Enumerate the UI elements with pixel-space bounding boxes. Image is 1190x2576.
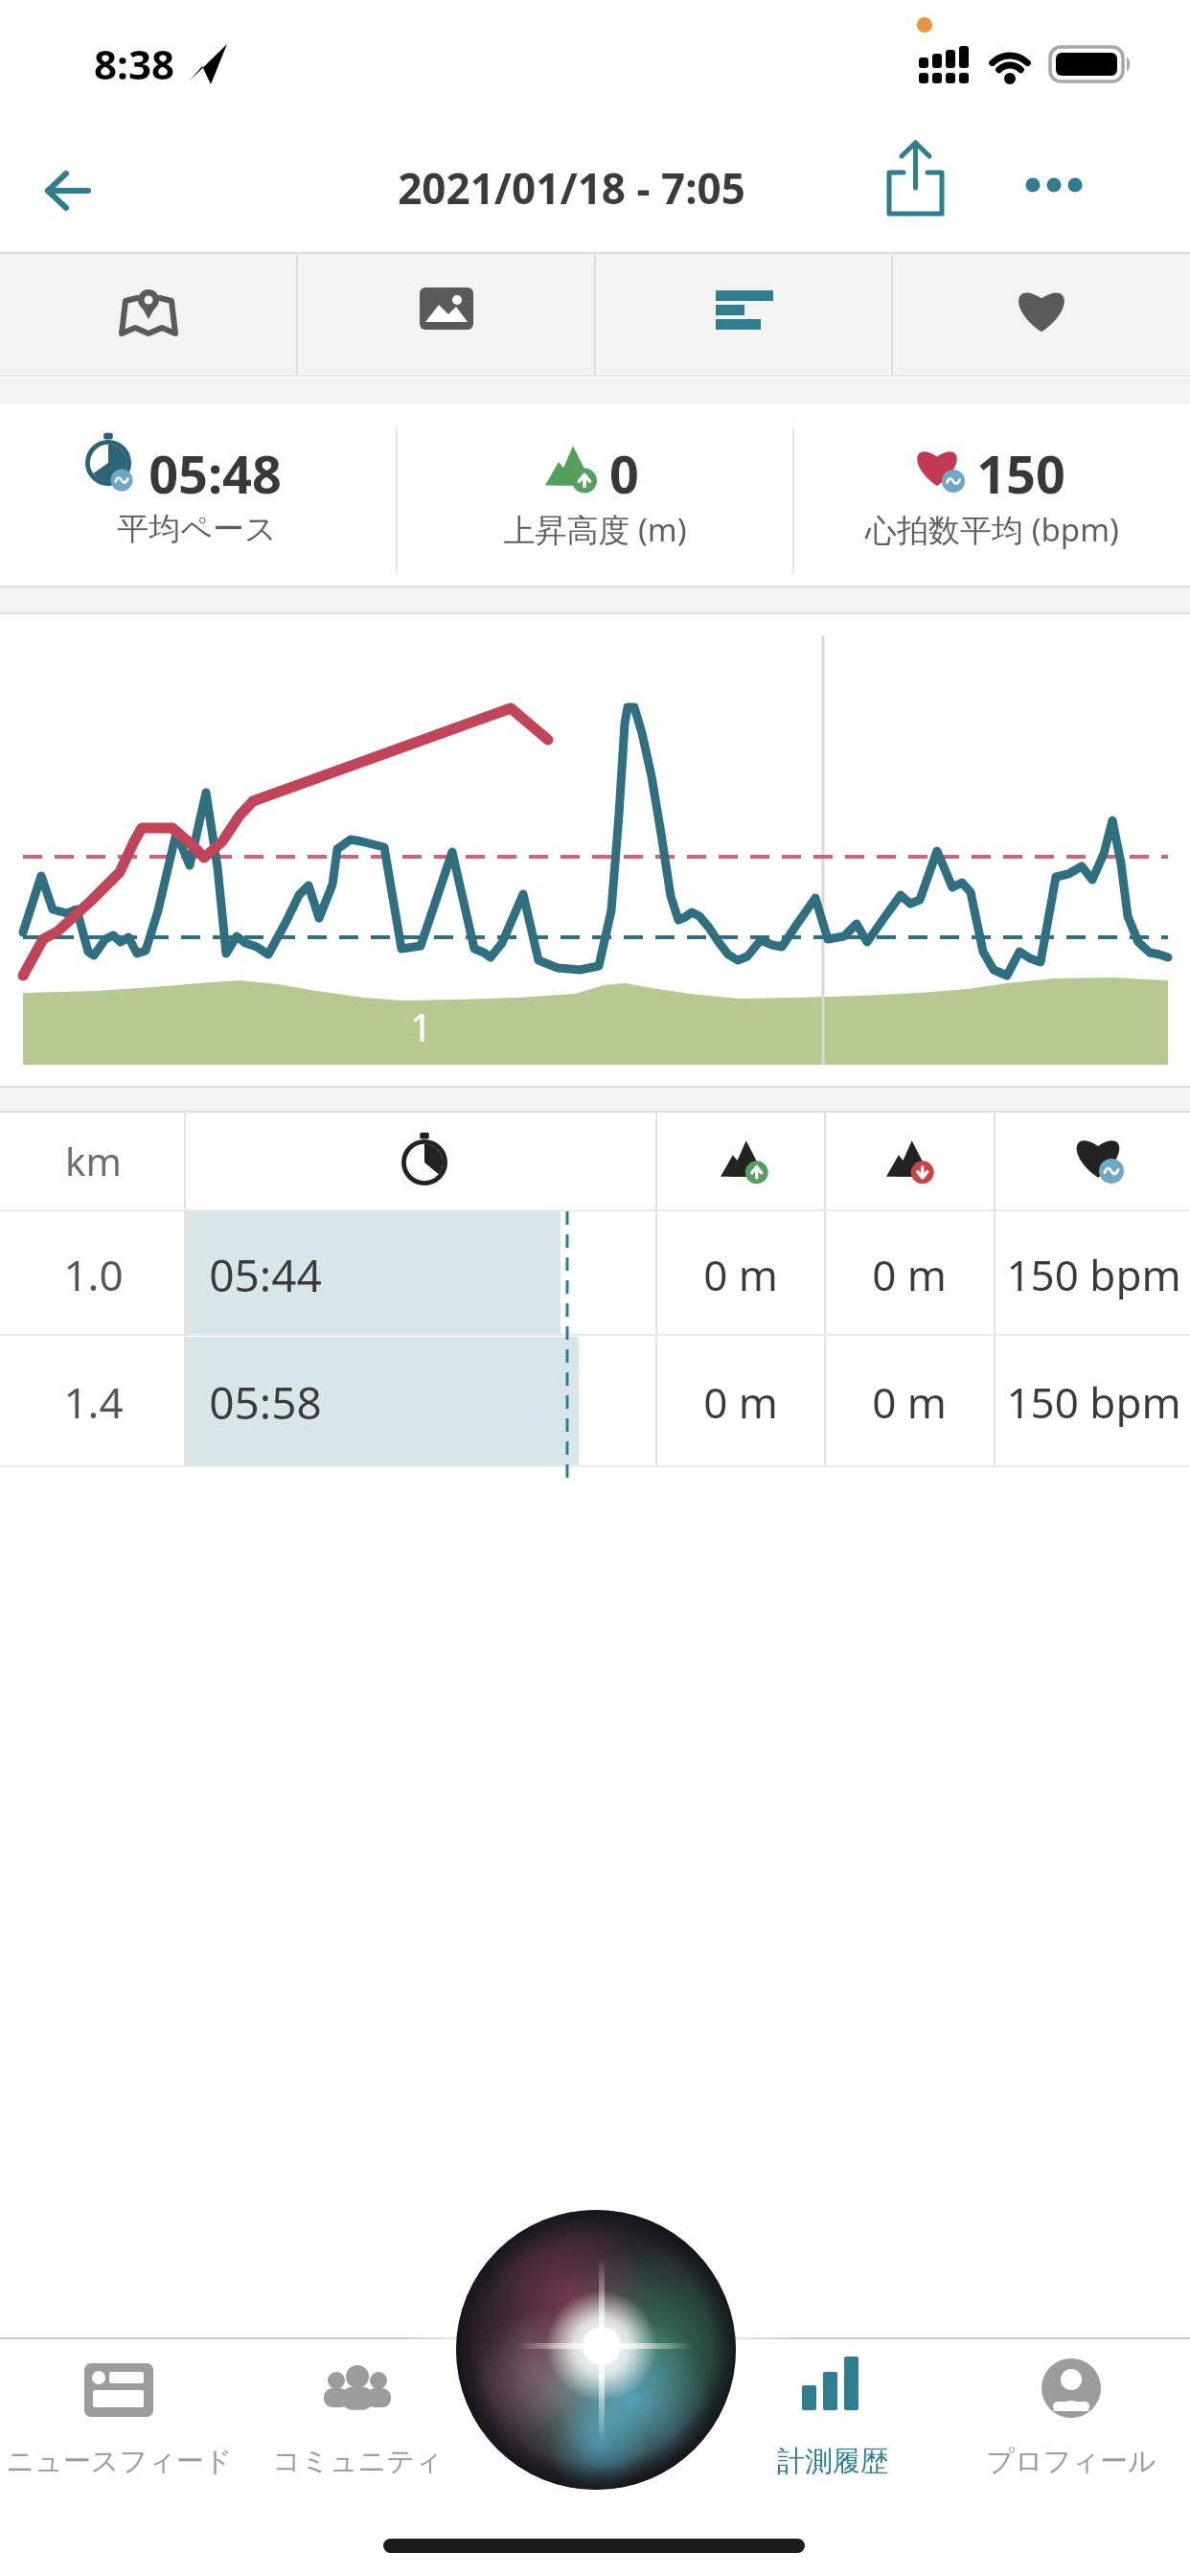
button[interactable] [0,255,297,375]
staticText: km [65,1135,122,1186]
staticText: 1 [410,1000,432,1052]
staticText: 05:48 [149,438,282,499]
button[interactable]: ニュースフィード [0,2340,238,2494]
staticText: コミュニティ [272,2444,444,2479]
staticText: 1.0 [63,1246,124,1299]
button[interactable]: 計測履歴 [714,2340,951,2494]
button[interactable] [1008,151,1100,220]
button[interactable] [476,2340,714,2494]
staticText: 0 m [872,1373,947,1427]
button[interactable] [27,151,103,228]
staticText: 2021/01/18 - 7:05 [398,159,745,217]
staticText: プロフィール [986,2444,1156,2479]
button[interactable] [0,1211,1190,1335]
staticText: 0 m [703,1246,778,1299]
staticText: 150 bpm [1006,1373,1181,1427]
staticText: 0 m [703,1373,778,1427]
staticText: 心拍数平均 (bpm) [865,508,1119,551]
staticText: 計測履歴 [777,2444,888,2479]
staticText: ニュースフィード [6,2444,233,2479]
staticText: 05:44 [209,1245,322,1300]
staticText: 150 bpm [1006,1246,1181,1299]
button[interactable]: コミュニティ [239,2340,476,2494]
staticText: 0 [609,438,639,499]
button[interactable] [298,255,595,375]
button[interactable] [0,1336,1190,1467]
staticText: 平均ペース [117,509,277,549]
button[interactable] [893,255,1190,375]
button[interactable] [595,255,892,375]
staticText: 8:38 [94,36,174,86]
staticText: 05:58 [209,1372,322,1428]
staticText: 150 [976,438,1065,499]
staticText: 1.4 [63,1373,124,1427]
button[interactable] [872,140,960,228]
staticText: 0 m [872,1246,947,1299]
button[interactable]: プロフィール [952,2340,1190,2494]
staticText: 上昇高度 (m) [503,508,687,551]
